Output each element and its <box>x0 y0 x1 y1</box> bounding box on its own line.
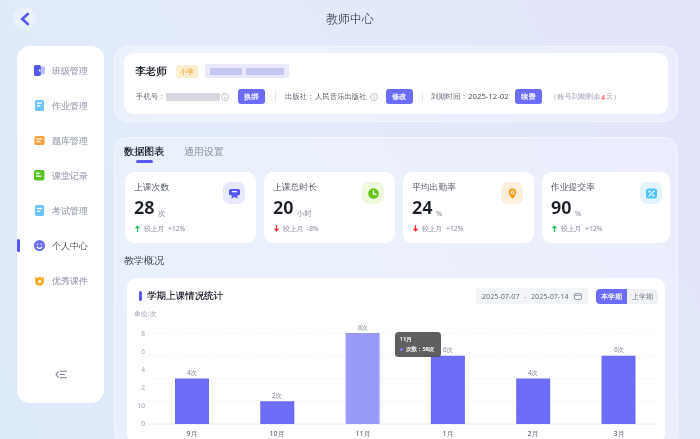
staticText: 6次 <box>608 345 630 354</box>
staticText: 8次 <box>352 323 374 332</box>
staticText: % <box>436 208 443 218</box>
staticText: 手机号： <box>136 92 166 101</box>
staticText: （账号到期剩余 <box>550 92 601 101</box>
staticText: +12% <box>168 224 186 233</box>
staticText: 4 <box>601 92 606 102</box>
button[interactable]: 作业管理 <box>17 88 104 123</box>
button[interactable]: 上课总时长 <box>264 172 395 243</box>
staticText: 28 <box>134 195 155 220</box>
button[interactable]: 优秀课件 <box>17 263 104 298</box>
staticText: 通用设置 <box>184 145 224 158</box>
staticText: 1月 <box>436 429 460 439</box>
staticText: 2025-12-02 <box>468 91 509 102</box>
staticText: 个人中心 <box>52 240 88 251</box>
staticText: 较上月 <box>283 224 304 233</box>
staticText: 到期时间： <box>431 92 468 101</box>
staticText: 修改 <box>392 92 407 101</box>
button[interactable]: Collapse menu <box>53 366 69 382</box>
button[interactable]: 换绑 <box>238 89 265 104</box>
staticText: 20 <box>273 195 294 220</box>
staticText: 0 <box>131 419 145 428</box>
button[interactable]: 修改 <box>386 89 413 104</box>
staticText: 次 <box>158 209 166 218</box>
staticText: +12% <box>446 224 464 233</box>
staticText: % <box>575 208 582 218</box>
staticText: 较上月 <box>422 224 443 233</box>
staticText: 出版社： <box>285 92 315 101</box>
button[interactable]: 上学期 <box>627 289 658 304</box>
staticText: 较上月 <box>561 224 582 233</box>
staticText: 2 <box>131 383 145 392</box>
staticText: -8% <box>307 224 319 233</box>
staticText: 90 <box>551 195 572 220</box>
button[interactable]: 本学期 <box>596 289 627 304</box>
staticText: 8 <box>131 329 145 338</box>
staticText: 4次 <box>522 368 544 377</box>
staticText: 3月 <box>607 429 631 439</box>
button[interactable]: Back <box>13 7 36 30</box>
staticText: 4次 <box>181 368 203 377</box>
button[interactable]: 数据图表 <box>124 145 164 163</box>
staticText: 作业提交率 <box>551 182 595 193</box>
button[interactable]: 上课次数 <box>125 172 256 243</box>
staticText: 平均出勤率 <box>412 182 456 193</box>
staticText: 作业管理 <box>52 100 88 111</box>
staticText: 10月 <box>265 429 289 439</box>
staticText: 考试管理 <box>52 205 88 216</box>
staticText: 天） <box>606 92 621 101</box>
staticText: 较上月 <box>144 224 165 233</box>
staticText: 次数：58次 <box>406 345 435 353</box>
staticText: 班级管理 <box>52 65 88 76</box>
button[interactable]: 作业提交率 <box>542 172 670 243</box>
staticText: 2025-07-07 <box>482 291 520 301</box>
staticText: 6 <box>131 347 145 356</box>
staticText: 10 <box>131 401 145 410</box>
button[interactable]: 班级管理 <box>17 53 104 88</box>
staticText: 2月 <box>521 429 545 439</box>
staticText: 李老师 <box>135 65 167 78</box>
button[interactable]: 续费 <box>515 89 542 104</box>
staticText: 上课次数 <box>134 182 170 193</box>
staticText: 数据图表 <box>124 145 164 158</box>
staticText: - <box>524 291 527 301</box>
staticText: 教师中心 <box>326 11 374 26</box>
staticText: 11月 <box>400 335 412 343</box>
staticText: 6次 <box>437 345 459 354</box>
staticText: 11月 <box>351 429 375 439</box>
button[interactable]: 通用设置 <box>184 145 224 158</box>
staticText: 4 <box>131 365 145 374</box>
staticText: 本学期 <box>601 292 622 301</box>
button[interactable]: 课堂记录 <box>17 158 104 193</box>
staticText: 上学期 <box>632 292 653 301</box>
staticText: 2025-07-14 <box>531 291 569 301</box>
staticText: 单位:次 <box>134 309 157 318</box>
button[interactable]: 平均出勤率 <box>403 172 534 243</box>
button[interactable]: 考试管理 <box>17 193 104 228</box>
staticText: 9月 <box>180 429 204 439</box>
button[interactable]: 2025-07-07 <box>476 288 588 304</box>
staticText: 课堂记录 <box>52 170 88 181</box>
staticText: 24 <box>412 195 433 220</box>
staticText: 小学 <box>180 67 194 76</box>
staticText: 换绑 <box>244 92 259 101</box>
staticText: 小时 <box>297 209 312 218</box>
button[interactable]: 题库管理 <box>17 123 104 158</box>
staticText: 优秀课件 <box>52 275 88 286</box>
staticText: +12% <box>585 224 603 233</box>
staticText: 续费 <box>521 92 536 101</box>
staticText: 上课总时长 <box>273 182 317 193</box>
staticText: 人民音乐出版社 <box>315 92 367 101</box>
staticText: 教学概况 <box>124 254 164 267</box>
staticText: 2次 <box>266 391 288 400</box>
staticText: 题库管理 <box>52 135 88 146</box>
button[interactable]: 个人中心 <box>17 228 104 263</box>
staticText: 学期上课情况统计 <box>147 290 223 302</box>
